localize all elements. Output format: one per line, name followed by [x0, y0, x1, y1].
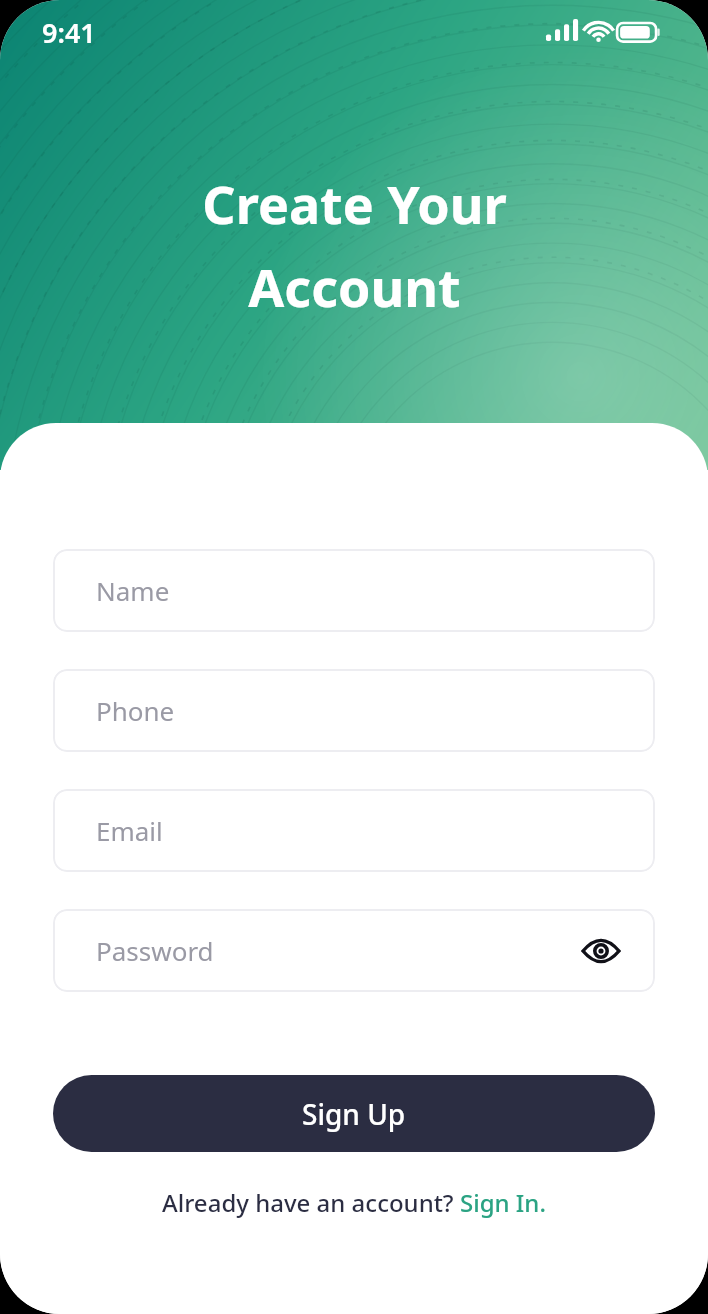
button[interactable]: Password — [53, 909, 655, 992]
button[interactable]: Sign Up — [53, 1075, 655, 1152]
staticText: Sign In. — [460, 1186, 546, 1219]
button[interactable]: Email — [53, 789, 655, 872]
staticText: Email — [96, 813, 163, 848]
button[interactable]: Name — [53, 549, 655, 632]
staticText: 9:41 — [42, 14, 96, 51]
staticText: Password — [96, 933, 214, 968]
staticText: Name — [96, 573, 170, 608]
button[interactable]: Phone — [53, 669, 655, 752]
button[interactable]: Already have an account? — [53, 1186, 655, 1219]
staticText: Phone — [96, 693, 175, 728]
staticText: Already have an account? — [162, 1186, 460, 1219]
staticText: Account — [248, 251, 461, 322]
staticText: Create Your — [202, 168, 507, 239]
button[interactable]: Show password — [575, 925, 627, 977]
staticText: Sign Up — [302, 1095, 406, 1133]
